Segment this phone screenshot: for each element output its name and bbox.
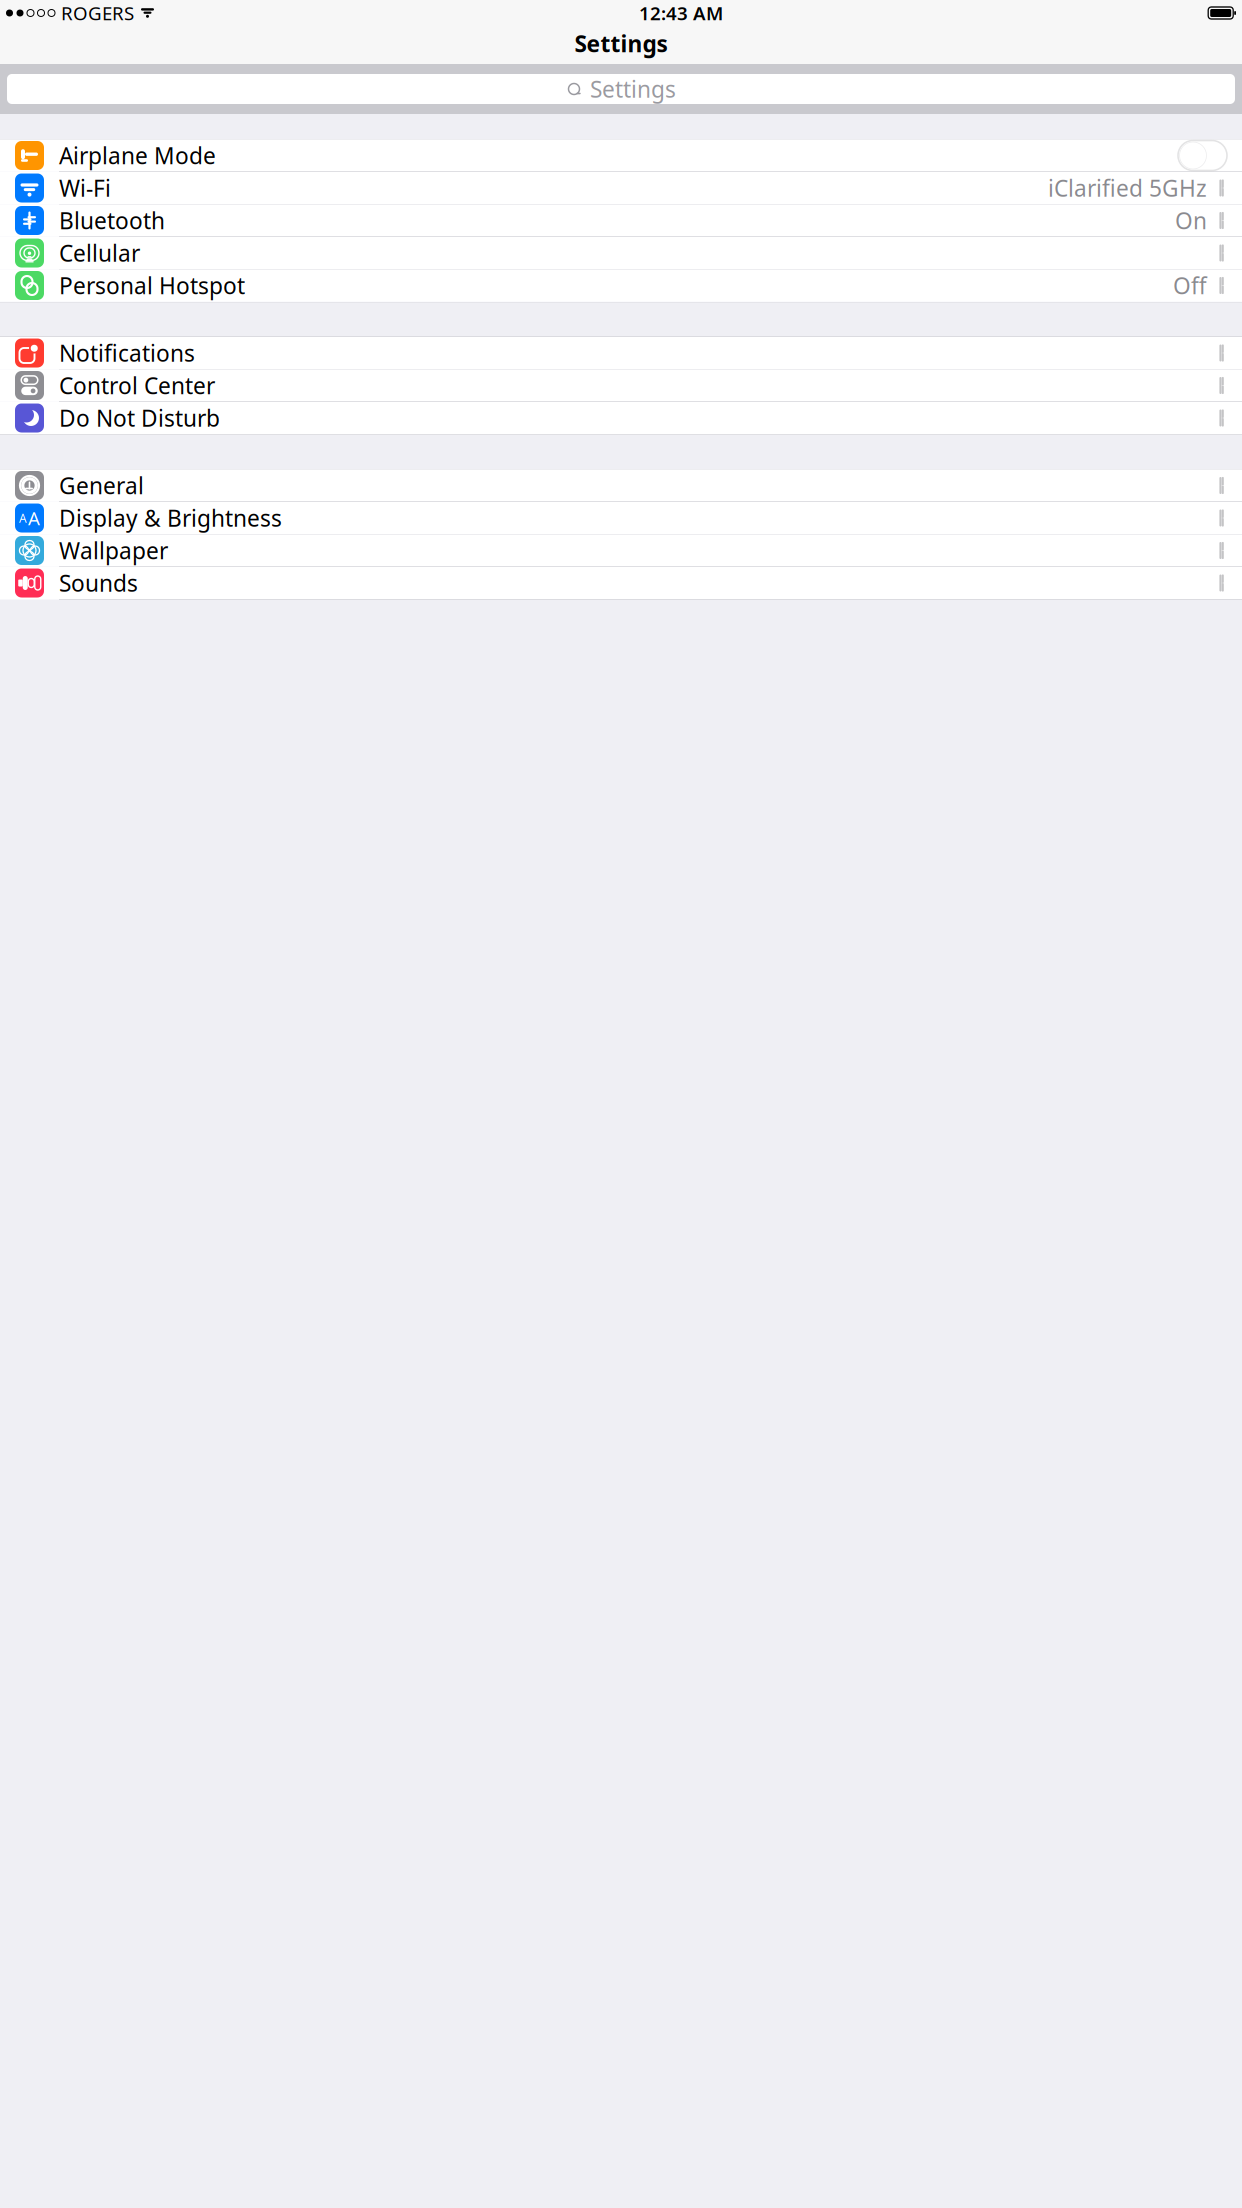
staticText: General (59, 470, 144, 500)
button[interactable]: Search Settings (0, 64, 1242, 114)
button[interactable]: Do Not Disturb (0, 402, 1242, 434)
button[interactable]: Notifications (0, 337, 1242, 369)
staticText: Personal Hotspot (59, 270, 245, 300)
staticText: Off (1173, 270, 1207, 300)
staticText: Bluetooth (59, 205, 165, 235)
button[interactable]: Airplane Mode (0, 139, 1242, 172)
button[interactable]: Control Center (0, 369, 1242, 402)
staticText: iClarified 5GHz (1048, 173, 1207, 203)
button[interactable]: Bluetooth (0, 204, 1242, 237)
button[interactable]: Sounds (0, 567, 1242, 599)
staticText: A (28, 506, 40, 530)
staticText: Display & Brightness (59, 503, 282, 533)
button[interactable]: General (0, 469, 1242, 502)
staticText: Do Not Disturb (59, 403, 220, 433)
staticText: Notifications (59, 338, 195, 368)
button[interactable]: A (0, 502, 1242, 534)
staticText: A (19, 510, 27, 526)
staticText: Settings (574, 28, 667, 58)
button[interactable]: Personal Hotspot (0, 269, 1242, 302)
staticText: Control Center (59, 370, 215, 400)
staticText: 12:43 AM (639, 1, 723, 25)
staticText: Settings (590, 74, 676, 104)
staticText: Wallpaper (59, 535, 168, 565)
staticText: Wi-Fi (59, 173, 111, 203)
button[interactable]: Wallpaper (0, 534, 1242, 567)
button[interactable]: Wi-Fi (0, 172, 1242, 204)
staticText: ROGERS (61, 1, 134, 25)
staticText: Airplane Mode (59, 140, 216, 170)
staticText: On (1175, 205, 1207, 235)
button[interactable]: Cellular (0, 237, 1242, 269)
staticText: Sounds (59, 568, 138, 598)
staticText: Cellular (59, 238, 140, 268)
